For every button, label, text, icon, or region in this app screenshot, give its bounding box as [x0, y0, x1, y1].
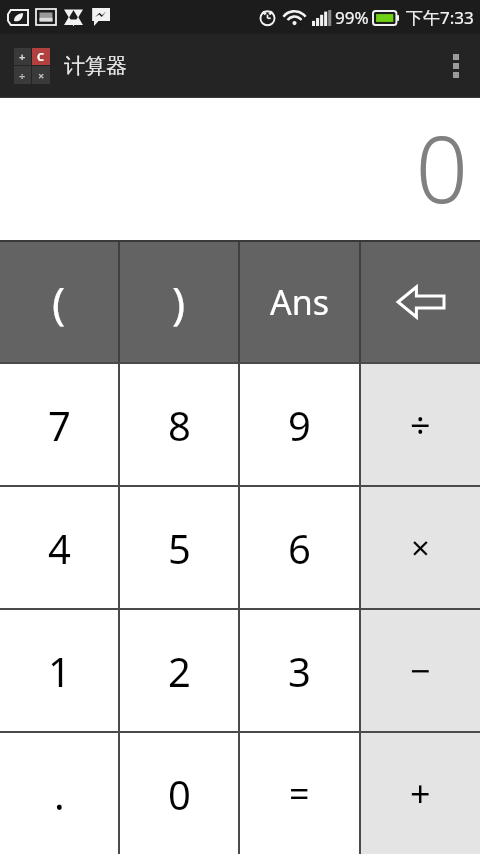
staticText: + — [410, 769, 431, 818]
staticText: 6 — [288, 521, 311, 575]
staticText: = — [289, 769, 310, 818]
button[interactable]: 0 — [120, 733, 238, 854]
staticText: 计算器 — [64, 53, 127, 79]
staticText: 9 — [288, 398, 311, 452]
button[interactable]: Backspace — [361, 242, 480, 362]
button[interactable]: + — [361, 733, 480, 854]
staticText: 2 — [168, 644, 191, 698]
staticText: 下午7:33 — [406, 6, 474, 29]
staticText: + — [19, 49, 26, 64]
staticText: 1 — [48, 644, 71, 698]
staticText: 5 — [168, 521, 191, 575]
button[interactable]: 8 — [120, 364, 238, 485]
button[interactable]: 3 — [240, 610, 359, 731]
staticText: C — [37, 49, 45, 64]
staticText: 3 — [288, 644, 311, 698]
staticText: ÷ — [410, 400, 431, 449]
staticText: 0 — [168, 767, 191, 821]
button[interactable]: 7 — [0, 364, 118, 485]
button[interactable]: 9 — [240, 364, 359, 485]
staticText: 4 — [48, 521, 71, 575]
staticText: 8 — [168, 398, 191, 452]
button[interactable]: 2 — [120, 610, 238, 731]
staticText: 7 — [48, 398, 71, 452]
button[interactable]: ÷ — [361, 364, 480, 485]
staticText: . — [54, 767, 65, 821]
staticText: Ans — [270, 279, 330, 325]
button[interactable]: − — [361, 610, 480, 731]
button[interactable]: 4 — [0, 487, 118, 608]
button[interactable]: ) — [120, 242, 238, 362]
button[interactable]: = — [240, 733, 359, 854]
staticText: ÷ — [19, 68, 26, 83]
staticText: − — [410, 646, 431, 695]
button[interactable]: Ans — [240, 242, 359, 362]
staticText: 99% — [335, 6, 369, 29]
staticText: ) — [172, 272, 186, 332]
staticText: × — [38, 68, 45, 83]
button[interactable]: 1 — [0, 610, 118, 731]
staticText: ( — [52, 272, 66, 332]
staticText: 0 — [415, 105, 468, 230]
button[interactable]: More options — [432, 34, 480, 98]
button[interactable]: ( — [0, 242, 118, 362]
staticText: × — [411, 525, 430, 570]
button[interactable]: 6 — [240, 487, 359, 608]
button[interactable]: . — [0, 733, 118, 854]
button[interactable]: 5 — [120, 487, 238, 608]
button[interactable]: × — [361, 487, 480, 608]
